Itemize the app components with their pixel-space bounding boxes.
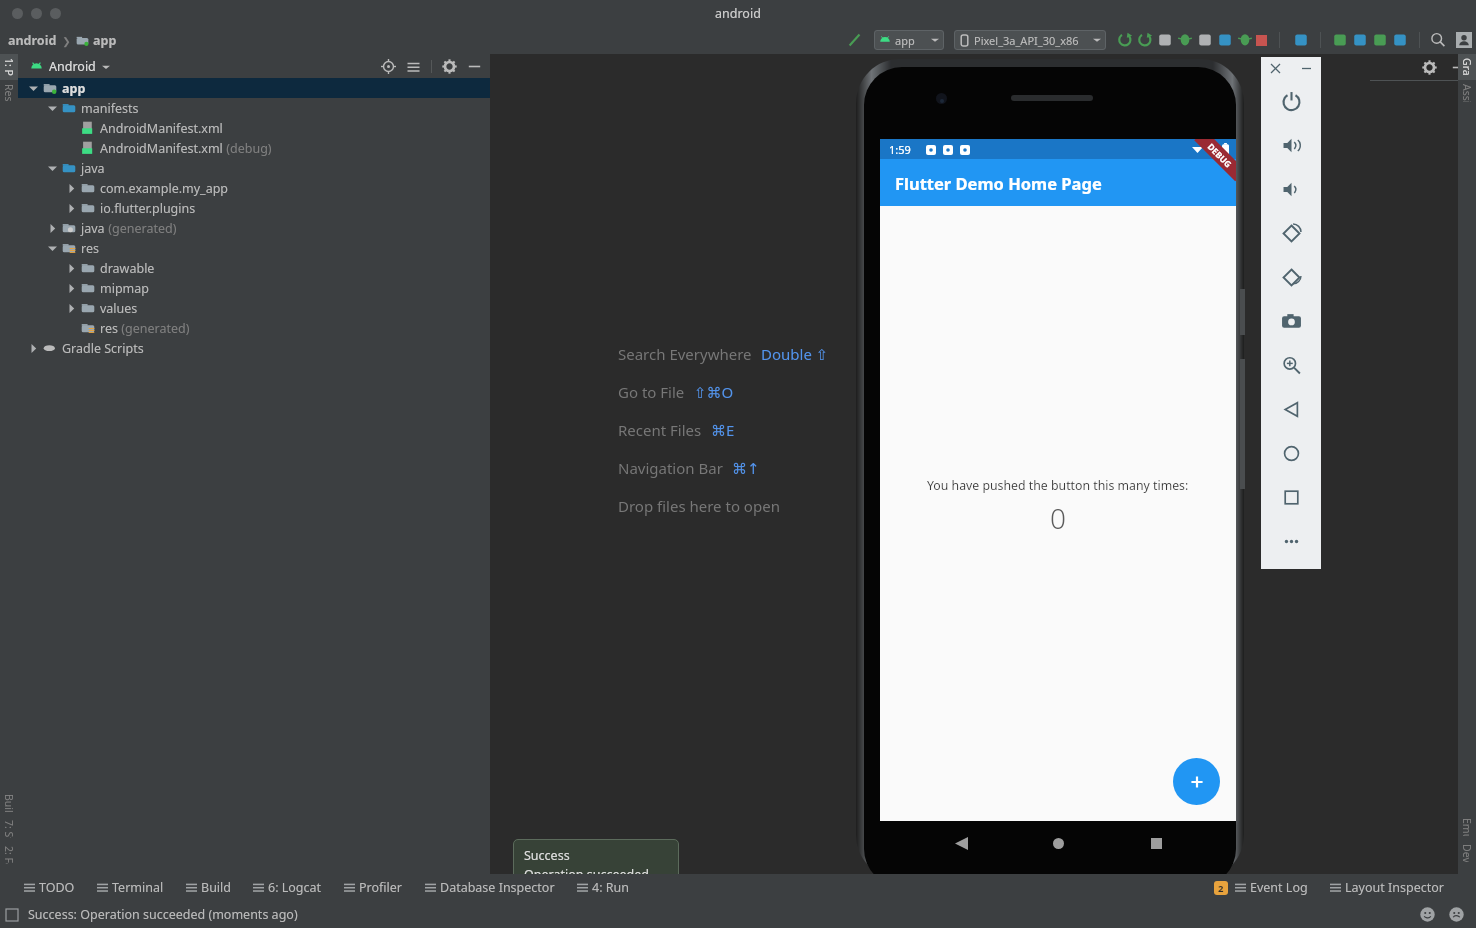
button[interactable]: app <box>93 32 117 49</box>
staticText: Build Variants <box>2 794 16 812</box>
button[interactable]: Collapse All <box>406 59 421 74</box>
button[interactable]: android <box>8 32 57 49</box>
button[interactable]: Back <box>1261 387 1321 431</box>
button[interactable] <box>1351 31 1369 49</box>
button[interactable]: Home <box>1041 826 1075 860</box>
staticText: 7: Structure <box>2 820 16 838</box>
button[interactable]: Increment <box>1173 758 1220 805</box>
button[interactable]: Recents <box>1139 826 1173 860</box>
button[interactable]: TODO <box>22 876 77 899</box>
button[interactable]: mipmap <box>18 278 490 298</box>
button[interactable]: Database Inspector <box>423 876 557 899</box>
button[interactable]: Sad <box>1449 907 1464 922</box>
button[interactable]: res <box>18 318 490 338</box>
button[interactable]: Gradle Scripts <box>18 338 490 358</box>
button[interactable]: Home <box>1261 431 1321 475</box>
button[interactable]: 4: Run <box>575 876 631 899</box>
button[interactable]: Search <box>1430 32 1446 48</box>
button[interactable]: io.flutter.plugins <box>18 198 490 218</box>
button[interactable]: Zoom <box>1261 343 1321 387</box>
button[interactable]: 7: Structure <box>0 816 18 842</box>
staticText: res <box>81 240 99 257</box>
button[interactable]: Resource Manager <box>0 80 18 106</box>
staticText: drawable <box>100 260 155 277</box>
button[interactable]: Locate <box>381 59 396 74</box>
staticText: Event Log <box>1250 879 1308 896</box>
button[interactable] <box>1292 31 1310 49</box>
button[interactable]: java <box>18 218 490 238</box>
button[interactable]: Event Log <box>1233 876 1310 899</box>
button[interactable]: Volume Down <box>1261 167 1321 211</box>
button[interactable]: values <box>18 298 490 318</box>
button[interactable]: Profiler <box>342 876 405 899</box>
button[interactable]: Happy <box>1420 907 1435 922</box>
button[interactable]: 2: Favorites <box>0 842 18 868</box>
button[interactable]: 1: Project <box>0 54 18 80</box>
button[interactable]: Hide <box>1451 60 1466 75</box>
button[interactable]: AndroidManifest.xml <box>18 138 490 158</box>
button[interactable]: manifests <box>18 98 490 118</box>
button[interactable]: Emulator <box>1458 814 1476 840</box>
staticText: AndroidManifest.xml <box>100 140 223 157</box>
button[interactable]: Success <box>513 839 679 891</box>
button[interactable]: Close <box>1271 64 1280 73</box>
button[interactable] <box>1331 31 1349 49</box>
button[interactable] <box>50 8 61 19</box>
button[interactable]: Terminal <box>95 876 166 899</box>
button[interactable]: drawable <box>18 258 490 278</box>
staticText: manifests <box>81 100 139 117</box>
button[interactable]: app <box>874 30 944 50</box>
button[interactable]: Build Variants <box>0 790 18 816</box>
button[interactable] <box>846 31 864 49</box>
button[interactable]: Gradle <box>1458 54 1476 80</box>
button[interactable] <box>1116 31 1134 49</box>
button[interactable]: Pixel_3a_API_30_x86 <box>954 30 1106 50</box>
staticText: (generated) <box>105 220 177 237</box>
button[interactable]: Build <box>184 876 233 899</box>
button[interactable]: Volume Up <box>1261 123 1321 167</box>
button[interactable] <box>1216 31 1234 49</box>
button[interactable]: Overview <box>1261 475 1321 519</box>
staticText: values <box>100 300 138 317</box>
button[interactable]: Screenshot <box>1261 299 1321 343</box>
button[interactable] <box>1196 31 1214 49</box>
staticText: Double ⇧ <box>761 344 829 364</box>
button[interactable]: Hide <box>467 59 482 74</box>
button[interactable]: java <box>18 158 490 178</box>
button[interactable]: app <box>18 78 490 98</box>
staticText: AndroidManifest.xml <box>100 120 223 137</box>
button[interactable] <box>1136 31 1154 49</box>
button[interactable] <box>31 8 42 19</box>
button[interactable] <box>12 8 23 19</box>
button[interactable] <box>1236 31 1254 49</box>
staticText: io.flutter.plugins <box>100 200 196 217</box>
button[interactable]: Assistant <box>1458 80 1476 106</box>
button[interactable]: Minimize <box>1302 64 1311 73</box>
staticText: res <box>100 320 118 337</box>
staticText: Resource Manager <box>2 84 16 102</box>
button[interactable]: Settings <box>442 59 457 74</box>
button[interactable]: res <box>18 238 490 258</box>
button[interactable] <box>1176 31 1194 49</box>
button[interactable]: Rotate Left <box>1261 211 1321 255</box>
staticText: Layout Inspector <box>1345 879 1444 896</box>
button[interactable]: More <box>1261 519 1321 563</box>
button[interactable]: Power <box>1261 79 1321 123</box>
button[interactable]: Settings <box>1422 60 1437 75</box>
button[interactable]: Back <box>944 826 978 860</box>
button[interactable]: Account <box>1456 32 1472 48</box>
staticText: Go to File <box>618 382 685 402</box>
button[interactable]: Rotate Right <box>1261 255 1321 299</box>
staticText: Android <box>49 58 96 75</box>
button[interactable]: Layout Inspector <box>1328 876 1446 899</box>
button[interactable]: com.example.my_app <box>18 178 490 198</box>
button[interactable]: 6: Logcat <box>251 876 324 899</box>
button[interactable] <box>1156 31 1174 49</box>
button[interactable] <box>1391 31 1409 49</box>
button[interactable] <box>1371 31 1389 49</box>
button[interactable]: Device File Explorer <box>1458 840 1476 866</box>
staticText: Navigation Bar <box>618 458 723 478</box>
button[interactable]: AndroidManifest.xml <box>18 118 490 138</box>
staticText: 1:59 <box>889 142 911 157</box>
